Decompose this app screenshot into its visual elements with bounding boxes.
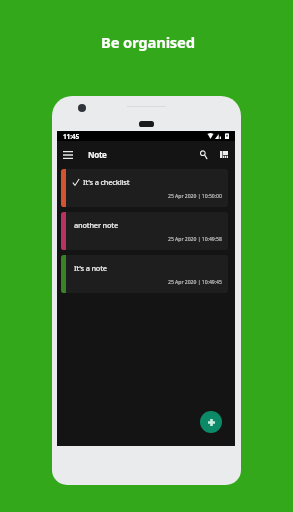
staticText: It's a checklist: [83, 177, 130, 187]
button[interactable]: Add note: [200, 411, 222, 433]
button[interactable]: It's a note: [61, 255, 228, 293]
button[interactable]: It's a checklist: [61, 169, 228, 207]
button[interactable]: Open navigation menu: [61, 148, 74, 161]
staticText: 25 Apr 2020 | 10:50:00: [168, 193, 222, 200]
button[interactable]: another note: [61, 212, 228, 250]
staticText: 25 Apr 2020 | 10:49:45: [168, 279, 222, 286]
staticText: 11:45: [63, 132, 79, 141]
button[interactable]: Search: [196, 147, 211, 162]
staticText: another note: [74, 220, 118, 230]
staticText: Be organised: [101, 32, 195, 52]
staticText: It's a note: [74, 263, 107, 273]
button[interactable]: Change layout: [216, 147, 231, 162]
staticText: Note: [88, 149, 107, 160]
staticText: 25 Apr 2020 | 10:49:58: [168, 236, 222, 243]
